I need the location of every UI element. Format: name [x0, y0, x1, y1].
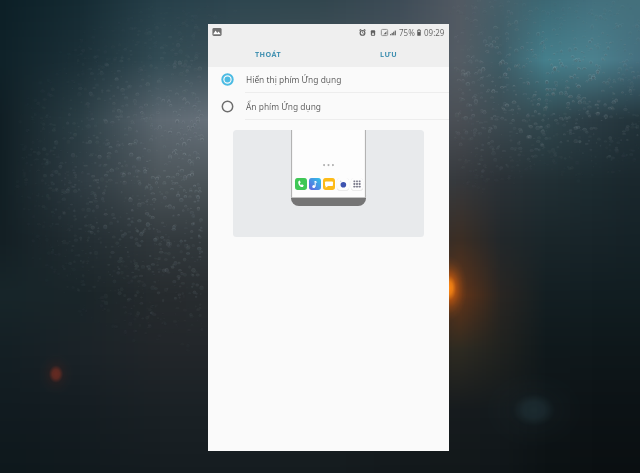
staticText: LƯU — [380, 49, 398, 59]
staticText: 09:29 — [424, 27, 445, 38]
button[interactable]: Ẩn phím Ứng dụng — [208, 93, 449, 120]
button[interactable]: Hiển thị phím Ứng dụng — [208, 67, 449, 93]
button[interactable]: THOÁT — [208, 40, 328, 67]
button[interactable]: LƯU — [328, 40, 449, 67]
staticText: THOÁT — [255, 49, 282, 59]
staticText: Hiển thị phím Ứng dụng — [246, 74, 342, 85]
staticText: Ẩn phím Ứng dụng — [246, 101, 322, 112]
staticText: 75% — [399, 27, 415, 38]
